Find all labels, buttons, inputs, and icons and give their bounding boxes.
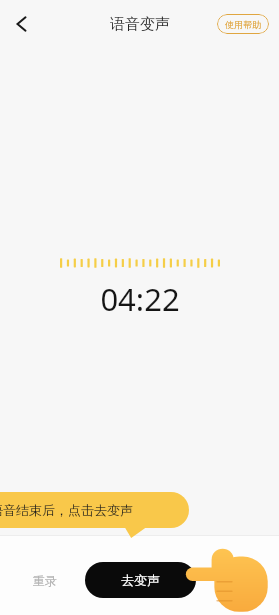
button[interactable]: 重录 bbox=[14, 563, 76, 597]
staticText: 使用帮助 bbox=[225, 19, 261, 30]
button[interactable]: 使用帮助 bbox=[217, 14, 269, 34]
staticText: 语音结束后，点击去变声 bbox=[0, 502, 133, 518]
button[interactable]: Back bbox=[0, 2, 44, 46]
staticText: 语音变声 bbox=[110, 15, 170, 34]
button[interactable]: 去变声 bbox=[85, 562, 196, 598]
staticText: 重录 bbox=[33, 573, 57, 588]
staticText: 去变声 bbox=[121, 572, 160, 588]
staticText: 04:22 bbox=[100, 278, 180, 320]
